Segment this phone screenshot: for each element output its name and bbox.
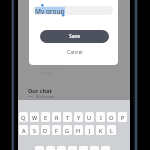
button[interactable]: Q	[19, 112, 28, 122]
staticText: D	[43, 127, 48, 134]
button[interactable]: H	[74, 125, 83, 135]
staticText: Save	[69, 33, 81, 40]
staticText: Our chat	[28, 87, 52, 94]
staticText: Q	[21, 114, 26, 121]
staticText: O	[109, 114, 114, 121]
staticText: Y	[77, 114, 81, 121]
button[interactable]: O	[107, 112, 116, 122]
button[interactable]: Z	[35, 146, 44, 150]
button[interactable]: G	[63, 125, 72, 135]
button[interactable]: I	[96, 112, 105, 122]
staticText: H	[76, 127, 81, 134]
staticText: Cancel	[67, 49, 83, 56]
button[interactable]: E	[41, 112, 50, 122]
staticText: U	[87, 114, 92, 121]
staticText: E	[44, 114, 48, 121]
staticText: J	[89, 127, 91, 134]
staticText: My group	[35, 7, 65, 14]
button[interactable]: F	[52, 125, 61, 135]
button[interactable]: C	[57, 146, 66, 150]
staticText: G	[65, 127, 70, 134]
staticText: I	[100, 114, 102, 121]
staticText: R	[55, 114, 59, 121]
button[interactable]: Y	[74, 112, 83, 122]
button[interactable]: N	[90, 146, 99, 150]
button[interactable]: J	[85, 125, 94, 135]
button[interactable]: X	[46, 146, 55, 150]
staticText: K	[99, 127, 103, 134]
staticText: T	[66, 114, 70, 121]
staticText: L	[110, 127, 113, 134]
button[interactable]: P	[118, 112, 127, 122]
staticText: A	[22, 127, 26, 134]
button[interactable]: My group	[33, 6, 113, 15]
button[interactable]: K	[96, 125, 105, 135]
button[interactable]: B	[79, 146, 88, 150]
button[interactable]: W	[30, 112, 39, 122]
button[interactable]: S	[30, 125, 39, 135]
staticText: P	[121, 114, 125, 121]
button[interactable]: M	[101, 146, 110, 150]
button[interactable]: T	[63, 112, 72, 122]
button[interactable]: U	[85, 112, 94, 122]
button[interactable]: Cancel	[40, 47, 109, 58]
button[interactable]: Save	[40, 30, 109, 43]
staticText: W	[32, 114, 38, 121]
button[interactable]: A	[19, 125, 28, 135]
button[interactable]: L	[107, 125, 116, 135]
staticText: S	[33, 127, 37, 134]
staticText: Wallpaper	[36, 94, 56, 99]
button[interactable]: V	[68, 146, 77, 150]
button[interactable]: D	[41, 125, 50, 135]
staticText: F	[55, 127, 58, 134]
button[interactable]: R	[52, 112, 61, 122]
